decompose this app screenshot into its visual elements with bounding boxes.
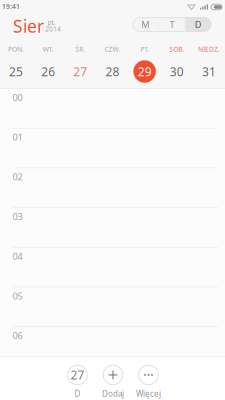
button[interactable]: M — [133, 17, 159, 31]
staticText: 28 — [105, 63, 119, 79]
staticText: WT. — [43, 45, 54, 54]
staticText: 30 — [170, 63, 184, 79]
staticText: T — [169, 18, 174, 31]
button[interactable]: D — [185, 17, 211, 31]
staticText: 26 — [41, 63, 55, 79]
staticText: 29 — [138, 63, 152, 79]
staticText: 25 — [9, 63, 23, 79]
staticText: CZW. — [104, 45, 120, 54]
button[interactable]: 29 — [129, 56, 161, 86]
staticText: 2014 — [45, 25, 61, 33]
staticText: M — [141, 18, 150, 31]
staticText: 06 — [12, 329, 22, 342]
staticText: 00 — [12, 91, 22, 103]
button[interactable]: 31 — [193, 56, 225, 86]
button[interactable]: 27 — [64, 56, 96, 86]
staticText: 01 — [12, 131, 22, 143]
staticText: PT. — [140, 45, 149, 54]
staticText: 19:41 — [2, 2, 20, 11]
staticText: Więcej — [136, 388, 161, 399]
button[interactable]: 26 — [32, 56, 64, 86]
staticText: D — [74, 388, 80, 399]
button[interactable]: Więcej — [130, 366, 166, 398]
button[interactable]: T — [159, 17, 185, 31]
staticText: pt. — [47, 18, 55, 27]
staticText: SOB. — [169, 45, 184, 54]
staticText: 02 — [12, 170, 22, 183]
staticText: Dodaj — [102, 388, 124, 399]
staticText: 03 — [12, 210, 22, 223]
button[interactable]: 30 — [161, 56, 193, 86]
staticText: 27 — [73, 63, 87, 79]
button[interactable]: Dodaj — [95, 366, 131, 398]
staticText: 04 — [12, 250, 22, 262]
staticText: Sier — [13, 14, 44, 37]
staticText: 05 — [12, 290, 22, 302]
staticText: 27 — [70, 367, 84, 383]
button[interactable]: 28 — [96, 56, 128, 86]
staticText: NIEDZ. — [198, 45, 220, 54]
button[interactable]: 27 — [59, 366, 95, 398]
staticText: ŚR. — [75, 45, 85, 54]
staticText: D — [195, 18, 202, 31]
staticText: PON. — [8, 45, 24, 54]
staticText: 31 — [202, 63, 216, 79]
button[interactable]: 25 — [0, 56, 32, 86]
